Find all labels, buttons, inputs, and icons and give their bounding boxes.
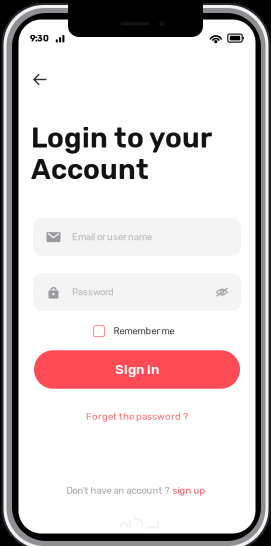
button[interactable]: Back xyxy=(25,66,55,92)
staticText: Don't have an account ? xyxy=(66,485,169,496)
button[interactable]: Sign in xyxy=(34,350,240,389)
staticText: sign up xyxy=(172,485,205,496)
staticText: Login to your xyxy=(31,121,212,155)
staticText: Password xyxy=(72,287,114,298)
staticText: Account xyxy=(31,153,149,186)
staticText: Email or user name xyxy=(72,232,152,243)
button[interactable]: Forget the password ? xyxy=(86,407,188,426)
staticText: Remember me xyxy=(113,326,174,337)
staticText: Sign in xyxy=(115,362,159,377)
staticText: 9:30 xyxy=(30,34,49,44)
button[interactable]: sign up xyxy=(172,485,205,496)
staticText: Forget the password ? xyxy=(86,411,188,422)
button[interactable]: Remember me xyxy=(93,322,174,341)
